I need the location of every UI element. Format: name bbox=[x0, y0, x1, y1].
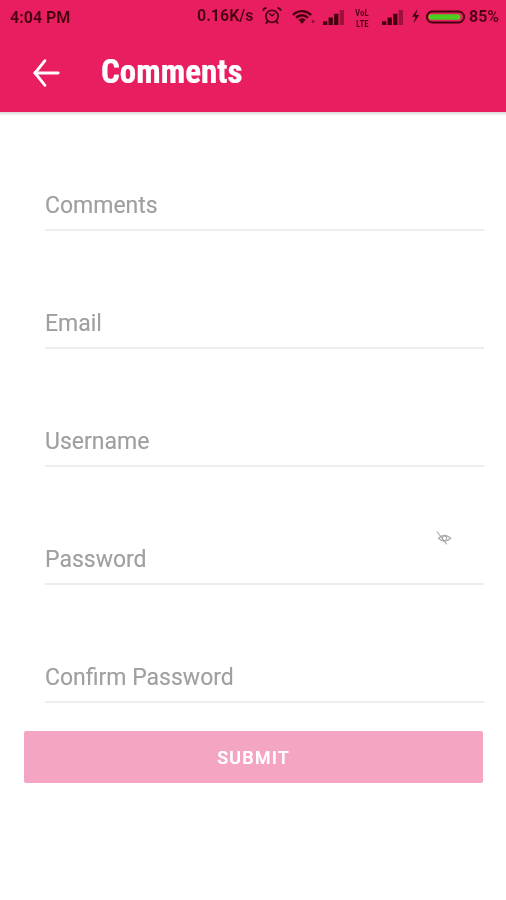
staticText: SUBMIT bbox=[217, 747, 290, 768]
staticText: 4:04 PM bbox=[10, 8, 71, 27]
staticText: Confirm Password bbox=[45, 664, 234, 691]
button[interactable]: Toggle password visibility bbox=[430, 524, 456, 550]
button[interactable]: Comments bbox=[45, 177, 484, 231]
button[interactable]: Email bbox=[45, 295, 484, 349]
staticText: 0.16K/s bbox=[197, 6, 254, 25]
button[interactable]: Username bbox=[45, 413, 484, 467]
staticText: LTE bbox=[356, 19, 369, 30]
button[interactable]: Confirm Password bbox=[45, 649, 484, 703]
staticText: Username bbox=[45, 428, 150, 455]
staticText: Comments bbox=[101, 52, 243, 91]
staticText: 85% bbox=[469, 7, 500, 26]
button[interactable]: Back bbox=[23, 50, 69, 96]
staticText: Comments bbox=[45, 192, 158, 219]
button[interactable]: Password bbox=[45, 531, 484, 585]
staticText: Email bbox=[45, 310, 102, 337]
staticText: Password bbox=[45, 546, 147, 573]
button[interactable]: SUBMIT bbox=[24, 731, 483, 783]
staticText: VoL bbox=[355, 8, 369, 19]
